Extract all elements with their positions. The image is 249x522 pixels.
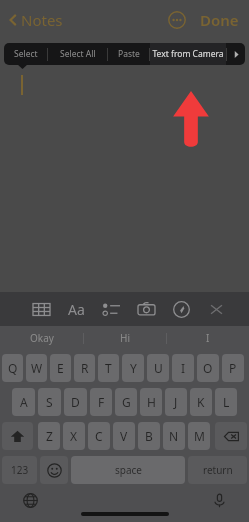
staticText: space (115, 463, 142, 477)
staticText: Done (200, 10, 239, 30)
button[interactable]: M (188, 422, 210, 450)
button[interactable]: Markup (166, 294, 196, 324)
staticText: Y (130, 360, 137, 376)
button[interactable]: A (12, 388, 35, 416)
staticText: L (223, 394, 230, 410)
staticText: S (46, 394, 53, 410)
staticText: D (71, 394, 80, 410)
button[interactable]: I (172, 354, 194, 382)
button[interactable]: J (165, 388, 187, 416)
staticText: I (181, 360, 186, 376)
staticText: E (57, 360, 64, 376)
button[interactable]: T (98, 354, 119, 382)
button[interactable]: G (115, 388, 137, 416)
staticText: Notes (21, 10, 63, 30)
button[interactable]: Emoji (40, 456, 68, 484)
button[interactable]: More options (166, 9, 188, 31)
button[interactable]: Camera (131, 294, 161, 324)
staticText: G (122, 394, 131, 410)
button[interactable]: I (167, 326, 249, 350)
button[interactable]: 123 (2, 456, 37, 484)
button[interactable]: O (197, 354, 219, 382)
staticText: Hi (120, 331, 130, 345)
button[interactable]: K (190, 388, 212, 416)
staticText: Text from Camera (152, 48, 224, 60)
staticText: P (229, 360, 237, 376)
staticText: A (20, 394, 28, 410)
button[interactable]: Table (26, 294, 56, 324)
button[interactable]: Text from Camera (150, 43, 226, 65)
button[interactable]: More actions (227, 43, 245, 65)
staticText: I (206, 331, 210, 345)
button[interactable]: V (113, 422, 135, 450)
button[interactable]: F (90, 388, 112, 416)
button[interactable]: Notes (6, 6, 65, 34)
button[interactable]: R (74, 354, 95, 382)
button[interactable]: Checklist (96, 294, 126, 324)
staticText: O (203, 360, 213, 376)
button[interactable]: Backspace (215, 422, 247, 450)
staticText: Z (46, 428, 53, 444)
button[interactable]: Change keyboard (18, 488, 42, 512)
button[interactable]: space (71, 456, 185, 484)
button[interactable]: Aa (61, 294, 91, 324)
staticText: 123 (11, 463, 29, 477)
button[interactable]: Y (122, 354, 144, 382)
staticText: X (70, 428, 78, 444)
staticText: Okay (30, 331, 54, 345)
staticText: Select (14, 48, 38, 60)
staticText: B (145, 428, 153, 444)
button[interactable]: Close keyboard (201, 294, 231, 324)
button[interactable]: D (64, 388, 87, 416)
staticText: K (197, 394, 205, 410)
button[interactable]: B (138, 422, 160, 450)
button[interactable]: Shift (2, 422, 33, 450)
button[interactable]: Dictate (207, 488, 231, 512)
staticText: C (95, 428, 103, 444)
button[interactable]: Done (198, 6, 241, 34)
staticText: Paste (118, 48, 140, 60)
button[interactable]: Z (38, 422, 60, 450)
staticText: T (105, 360, 112, 376)
staticText: F (98, 394, 105, 410)
staticText: Select All (60, 48, 96, 60)
staticText: Q (8, 360, 18, 376)
staticText: V (120, 428, 128, 444)
button[interactable]: N (163, 422, 185, 450)
button[interactable]: E (50, 354, 71, 382)
button[interactable]: Paste (108, 43, 149, 65)
button[interactable]: P (222, 354, 244, 382)
staticText: M (194, 428, 205, 444)
staticText: N (169, 428, 179, 444)
staticText: J (174, 394, 178, 410)
staticText: U (154, 360, 163, 376)
button[interactable]: H (140, 388, 162, 416)
button[interactable]: L (215, 388, 237, 416)
staticText: W (31, 360, 43, 376)
button[interactable]: X (63, 422, 85, 450)
staticText: Aa (68, 300, 85, 319)
button[interactable]: S (38, 388, 61, 416)
button[interactable]: W (26, 354, 47, 382)
button[interactable]: return (188, 456, 247, 484)
button[interactable]: Select (4, 43, 47, 65)
button[interactable]: C (88, 422, 110, 450)
button[interactable]: Q (2, 354, 23, 382)
staticText: R (81, 360, 89, 376)
button[interactable]: Okay (0, 326, 83, 350)
staticText: return (203, 463, 233, 477)
staticText: H (147, 394, 156, 410)
button[interactable]: Hi (84, 326, 166, 350)
button[interactable]: Select All (48, 43, 107, 65)
button[interactable]: U (147, 354, 169, 382)
